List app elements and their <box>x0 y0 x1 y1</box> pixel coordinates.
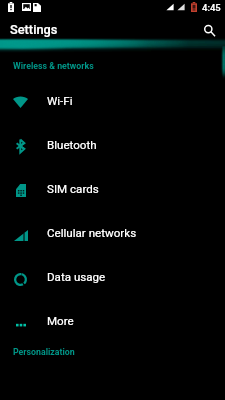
button[interactable]: Data usage <box>0 254 225 298</box>
staticText: 4:45 <box>202 2 221 13</box>
staticText: More <box>47 314 74 328</box>
button[interactable]: More <box>0 298 225 342</box>
staticText: SIM cards <box>47 182 99 196</box>
staticText: Cellular networks <box>47 226 137 240</box>
staticText: Wireless & networks <box>13 61 94 71</box>
button[interactable]: Search <box>196 17 224 45</box>
button[interactable]: Bluetooth <box>0 122 225 166</box>
button[interactable]: Cellular networks <box>0 210 225 254</box>
staticText: Data usage <box>47 270 106 284</box>
staticText: Personalization <box>13 347 75 357</box>
staticText: Settings <box>10 22 58 37</box>
button[interactable]: SIM cards <box>0 166 225 210</box>
staticText: Wi-Fi <box>47 94 73 108</box>
staticText: Bluetooth <box>47 138 97 152</box>
button[interactable]: Wi-Fi <box>0 78 225 122</box>
